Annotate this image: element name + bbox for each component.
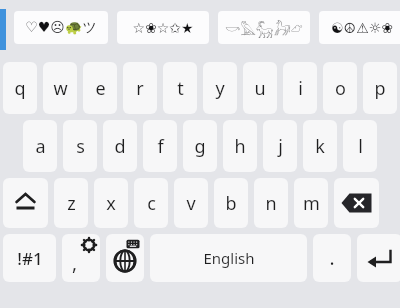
button[interactable]: ☯☮⚠☼❀ [319,11,400,44]
staticText: . [329,245,335,271]
staticText: m [303,191,320,216]
button[interactable]: e [83,62,117,114]
button[interactable]: p [363,62,397,114]
staticText: , [72,250,78,276]
staticText: r [136,76,144,101]
staticText: c [147,191,156,216]
staticText: s [76,134,85,159]
staticText: a [35,134,46,159]
button[interactable]: y [203,62,237,114]
button[interactable]: s [63,120,97,172]
staticText: f [157,134,164,159]
button[interactable]: l [343,120,377,172]
staticText: ♡♥☹🐢ツ [25,19,97,37]
button[interactable]: x [94,178,128,228]
staticText: ☆❀☆✩★ [132,20,194,36]
button[interactable]: c [134,178,168,228]
staticText: x [106,191,116,216]
button[interactable]: 𓎡𓅓𓃵𓃗𓃿 [218,11,310,44]
button[interactable]: r [123,62,157,114]
staticText: h [234,134,246,159]
button[interactable]: j [263,120,297,172]
button[interactable]: g [183,120,217,172]
staticText: t [177,76,184,101]
button[interactable]: m [294,178,328,228]
staticText: 𓎡𓅓𓃵𓃗𓃿 [225,16,303,39]
button[interactable]: v [174,178,208,228]
button[interactable]: Comma and settings [62,234,100,282]
staticText: u [254,76,266,101]
staticText: n [265,191,277,216]
staticText: w [53,76,68,101]
staticText: j [278,134,283,159]
button[interactable]: English [150,234,307,282]
button[interactable]: b [214,178,248,228]
button[interactable]: Change language [106,234,144,282]
button[interactable]: Backspace [334,178,379,228]
button[interactable]: i [283,62,317,114]
staticText: l [358,134,363,159]
staticText: English [203,248,255,268]
button[interactable]: n [254,178,288,228]
staticText: v [186,191,196,216]
button[interactable]: u [243,62,277,114]
button[interactable]: a [23,120,57,172]
button[interactable]: f [143,120,177,172]
button[interactable]: z [54,178,88,228]
button[interactable]: . [313,234,351,282]
button[interactable]: ☆❀☆✩★ [117,11,209,44]
staticText: y [215,76,225,101]
staticText: z [67,191,76,216]
staticText: ☯☮⚠☼❀ [331,20,393,36]
staticText: b [225,191,237,216]
button[interactable]: Enter [357,234,400,282]
button[interactable]: Shift [3,178,48,228]
button[interactable]: t [163,62,197,114]
staticText: o [335,76,346,101]
button[interactable]: !#1 [3,234,56,282]
button[interactable]: q [3,62,37,114]
button[interactable]: ♡♥☹🐢ツ [14,11,108,44]
button[interactable]: k [303,120,337,172]
staticText: i [298,76,303,101]
staticText: d [114,134,126,159]
button[interactable]: h [223,120,257,172]
button[interactable]: d [103,120,137,172]
staticText: g [194,134,206,159]
staticText: k [315,134,325,159]
staticText: !#1 [17,247,43,270]
staticText: p [374,76,386,101]
button[interactable]: w [43,62,77,114]
staticText: q [14,76,26,101]
staticText: e [95,76,106,101]
button[interactable]: o [323,62,357,114]
